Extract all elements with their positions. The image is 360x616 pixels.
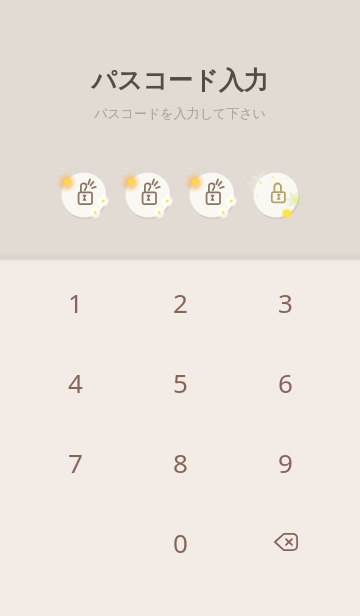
staticText: 5 <box>173 365 188 400</box>
button[interactable]: 0 <box>128 502 233 582</box>
staticText: 7 <box>68 445 83 480</box>
button[interactable]: 1 <box>23 262 128 342</box>
staticText: 9 <box>278 445 293 480</box>
staticText: 4 <box>68 365 83 400</box>
staticText: 8 <box>173 445 188 480</box>
staticText: パスコード入力 <box>91 65 269 96</box>
staticText: 6 <box>278 365 293 400</box>
button[interactable]: 9 <box>233 422 338 502</box>
button[interactable]: 6 <box>233 342 338 422</box>
staticText: 1 <box>68 285 83 320</box>
button[interactable]: 3 <box>233 262 338 342</box>
staticText: 0 <box>173 525 188 560</box>
button[interactable]: 5 <box>128 342 233 422</box>
staticText: 2 <box>173 285 188 320</box>
button[interactable]: 4 <box>23 342 128 422</box>
other: Delete <box>274 533 298 551</box>
staticText: 3 <box>278 285 293 320</box>
button[interactable]: 2 <box>128 262 233 342</box>
button[interactable]: 8 <box>128 422 233 502</box>
button[interactable]: Delete <box>233 502 338 582</box>
button[interactable]: 7 <box>23 422 128 502</box>
staticText: パスコードを入力して下さい <box>94 105 266 121</box>
